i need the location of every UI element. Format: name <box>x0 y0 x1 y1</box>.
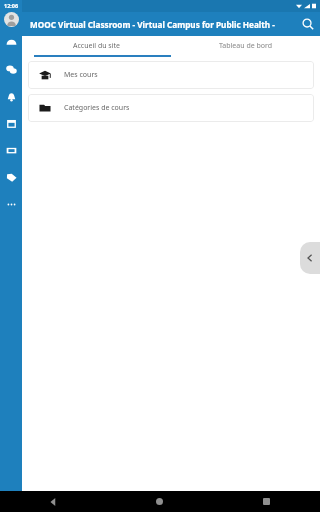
button[interactable]: Notifications <box>3 88 19 104</box>
staticText: Accueil du site <box>73 41 120 51</box>
button[interactable]: Tags <box>3 169 19 185</box>
staticText: 12:06 <box>4 2 19 9</box>
staticText: MOOC Virtual Classroom - Virtual Campus … <box>30 19 294 30</box>
button[interactable]: Tableau de bord <box>171 36 320 55</box>
button[interactable]: Search <box>296 12 320 36</box>
button[interactable]: Dashboard <box>3 34 19 50</box>
button[interactable]: Back <box>0 491 106 512</box>
button[interactable]: Profile <box>4 12 19 27</box>
button[interactable]: Messages <box>3 61 19 77</box>
staticText: Catégories de cours <box>64 103 130 113</box>
button[interactable]: Open drawer <box>300 242 320 274</box>
button[interactable]: Home <box>106 491 213 512</box>
staticText: Mes cours <box>64 70 98 80</box>
button[interactable]: Recents <box>213 491 320 512</box>
button[interactable]: More <box>3 196 19 212</box>
button[interactable]: Calendar <box>3 115 19 131</box>
staticText: Tableau de bord <box>219 41 273 51</box>
button[interactable]: Accueil du site <box>22 36 171 55</box>
button[interactable]: Media <box>3 142 19 158</box>
button[interactable]: Catégories de cours <box>28 94 314 122</box>
button[interactable]: Mes cours <box>28 61 314 89</box>
